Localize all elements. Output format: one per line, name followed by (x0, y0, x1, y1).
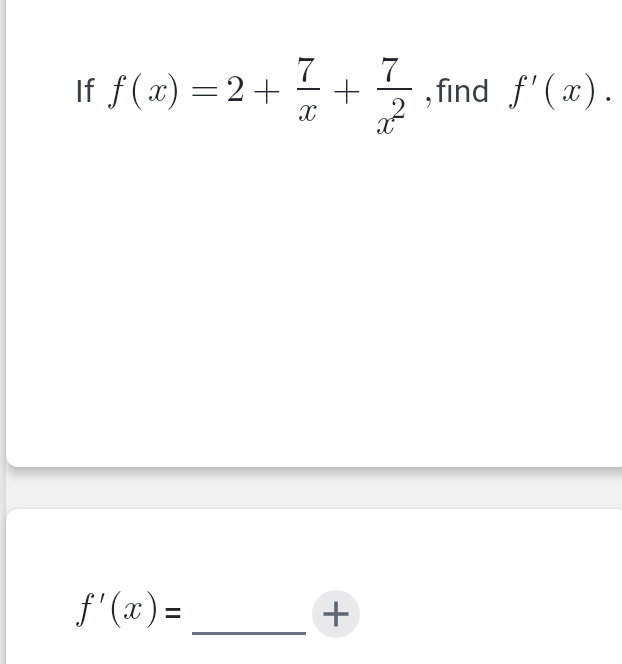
staticText: x (122, 576, 140, 630)
staticText: + (332, 58, 362, 112)
staticText: find (436, 72, 490, 110)
staticText: . (603, 58, 614, 112)
button[interactable] (312, 590, 360, 638)
staticText: 2 (391, 84, 406, 127)
staticText: x (375, 91, 393, 145)
staticText: 2 (226, 58, 246, 112)
staticText: f (77, 576, 89, 630)
staticText: ' (523, 58, 535, 112)
staticText: 7 (380, 39, 400, 93)
staticText: ) (145, 576, 160, 630)
staticText: ( (129, 58, 144, 112)
staticText: ) (583, 58, 598, 112)
staticText: 7 (296, 39, 316, 93)
staticText: f (109, 58, 121, 112)
staticText: x (147, 58, 165, 112)
staticText: ( (108, 576, 123, 630)
staticText: f (510, 58, 522, 112)
staticText: ' (91, 576, 103, 630)
staticText: = (163, 592, 183, 634)
staticText: x (561, 58, 579, 112)
staticText: = (190, 58, 220, 112)
staticText: + (252, 58, 282, 112)
staticText: x (297, 78, 315, 132)
staticText: If (75, 72, 95, 110)
staticText: , (423, 58, 434, 112)
staticText: ( (542, 58, 557, 112)
staticText: ) (166, 58, 181, 112)
